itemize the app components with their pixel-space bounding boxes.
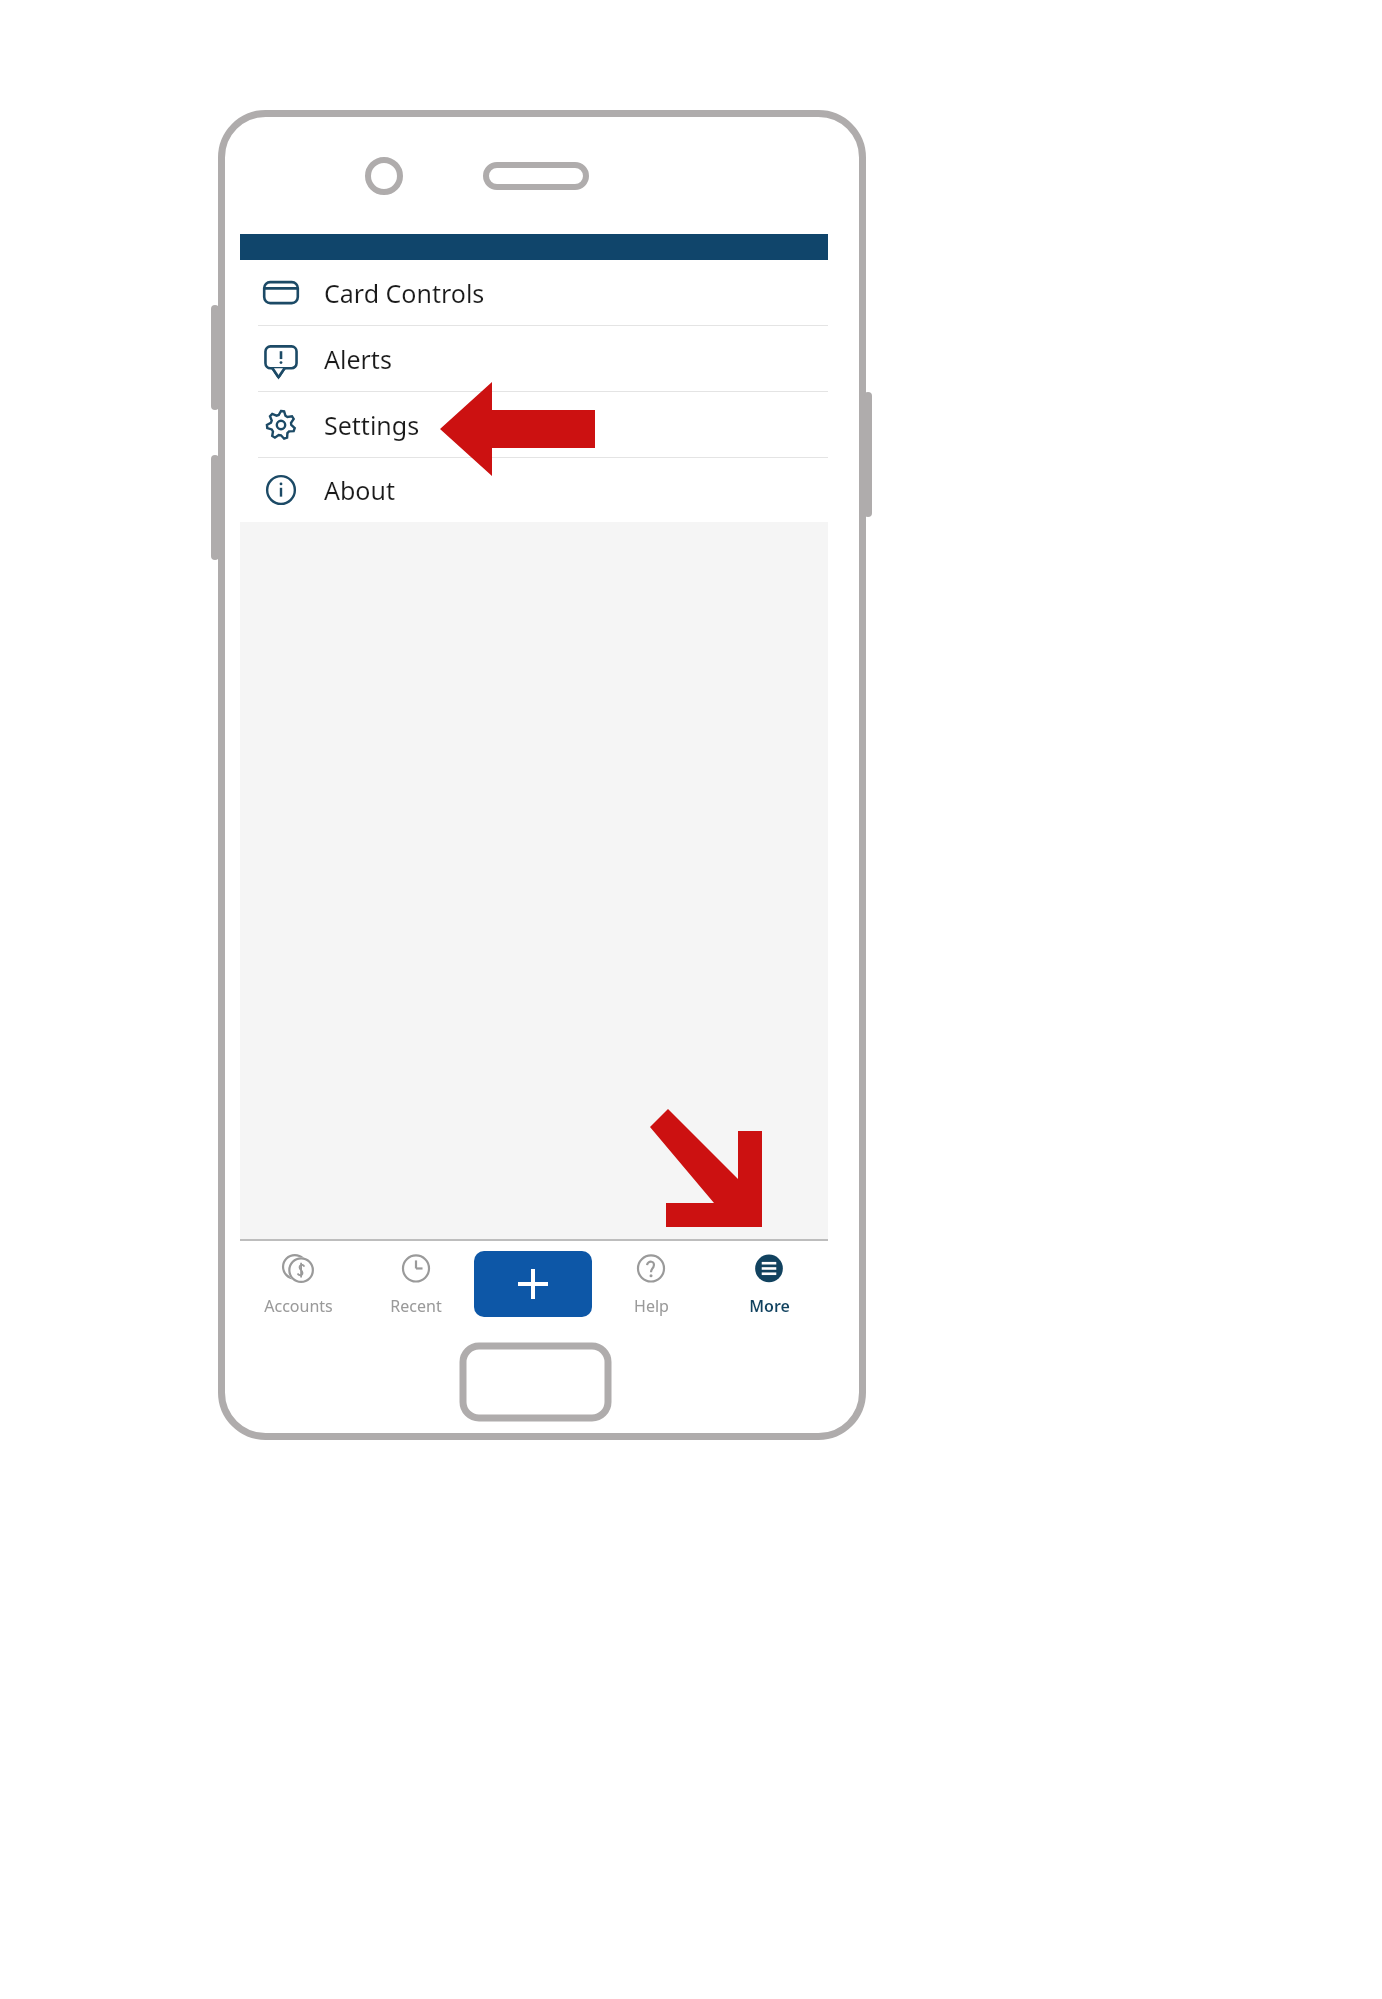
button[interactable]: Accounts bbox=[240, 1241, 357, 1326]
button[interactable]: More bbox=[710, 1241, 828, 1326]
button[interactable]: Settings bbox=[240, 392, 828, 457]
staticText: Settings bbox=[324, 408, 420, 442]
staticText: Alerts bbox=[324, 342, 392, 376]
staticText: Accounts bbox=[264, 1295, 333, 1317]
button[interactable]: Add bbox=[474, 1251, 592, 1317]
button[interactable]: About bbox=[240, 458, 828, 522]
button[interactable]: Recent bbox=[357, 1241, 474, 1326]
button[interactable]: Alerts bbox=[240, 326, 828, 391]
staticText: About bbox=[324, 473, 395, 507]
staticText: Card Controls bbox=[324, 276, 485, 310]
staticText: Recent bbox=[390, 1295, 442, 1317]
staticText: More bbox=[749, 1295, 790, 1317]
staticText: Help bbox=[634, 1295, 669, 1317]
button[interactable]: Help bbox=[592, 1241, 710, 1326]
button[interactable]: Card Controls bbox=[240, 260, 828, 325]
